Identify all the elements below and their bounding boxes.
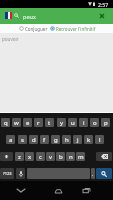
staticText: n <box>69 153 73 161</box>
button[interactable]: q <box>1 118 10 127</box>
button[interactable]: Shift <box>0 152 13 161</box>
button[interactable]: z <box>15 152 24 161</box>
button[interactable]: Conjuguer <box>19 24 48 33</box>
staticText: e <box>26 119 30 127</box>
staticText: w <box>14 119 19 127</box>
button[interactable]: j <box>73 135 82 144</box>
button[interactable]: m <box>76 152 85 161</box>
staticText: k <box>87 136 91 144</box>
staticText: Retrouver l'infinitif <box>56 26 96 32</box>
staticText: b <box>59 153 63 161</box>
button[interactable]: h <box>62 135 71 144</box>
staticText: j <box>77 136 79 144</box>
button[interactable]: s <box>18 135 27 144</box>
button[interactable]: u <box>68 118 77 127</box>
staticText: ?123 <box>3 171 12 176</box>
staticText: h <box>65 136 69 144</box>
button[interactable]: p <box>101 118 110 127</box>
button[interactable]: o <box>90 118 99 127</box>
staticText: s <box>21 136 24 144</box>
button[interactable]: g <box>51 135 60 144</box>
button[interactable]: l <box>95 135 104 144</box>
button[interactable]: Backspace <box>96 152 112 161</box>
staticText: y <box>60 119 64 127</box>
staticText: i <box>83 119 85 127</box>
button[interactable]: Voice input <box>16 168 25 179</box>
button[interactable]: w <box>12 118 21 127</box>
button[interactable]: t <box>45 118 54 127</box>
button[interactable]: n <box>66 152 75 161</box>
staticText: peux <box>23 13 36 20</box>
button[interactable]: d <box>29 135 38 144</box>
staticText: z <box>18 153 21 161</box>
button[interactable]: e <box>23 118 32 127</box>
button[interactable]: r <box>34 118 43 127</box>
button[interactable]: y <box>57 118 66 127</box>
staticText: 2:57 <box>98 1 109 8</box>
button[interactable]: v <box>46 152 55 161</box>
staticText: r <box>37 119 40 127</box>
button[interactable]: Retrouver l'infinitif <box>50 24 96 33</box>
staticText: p <box>104 119 108 127</box>
staticText: g <box>54 136 58 144</box>
button[interactable]: ?123 <box>0 168 14 179</box>
staticText: a <box>9 136 13 144</box>
staticText: q <box>4 119 8 127</box>
button[interactable]: . <box>91 168 95 179</box>
button[interactable]: Clear query <box>95 8 109 24</box>
staticText: c <box>39 153 42 161</box>
button[interactable]: Home <box>45 181 71 200</box>
staticText: pouvoir <box>2 36 19 42</box>
staticText: o <box>93 119 97 127</box>
button[interactable]: k <box>84 135 93 144</box>
button[interactable]: b <box>56 152 65 161</box>
button[interactable]: Recent apps <box>73 181 99 200</box>
staticText: x <box>28 153 32 161</box>
button[interactable]: f <box>40 135 49 144</box>
button[interactable]: a <box>6 135 15 144</box>
staticText: d <box>32 136 36 144</box>
button[interactable]: Hide keyboard <box>8 181 34 200</box>
staticText: m <box>78 153 84 161</box>
staticText: Conjuguer <box>25 26 48 32</box>
staticText: l <box>99 136 101 144</box>
button[interactable]: x <box>25 152 34 161</box>
staticText: v <box>49 153 53 161</box>
staticText: . <box>92 171 94 177</box>
staticText: u <box>71 119 75 127</box>
staticText: t <box>48 119 51 127</box>
button[interactable]: i <box>79 118 88 127</box>
button[interactable]: c <box>36 152 45 161</box>
button[interactable]: Search <box>96 168 112 179</box>
staticText: f <box>43 136 46 144</box>
